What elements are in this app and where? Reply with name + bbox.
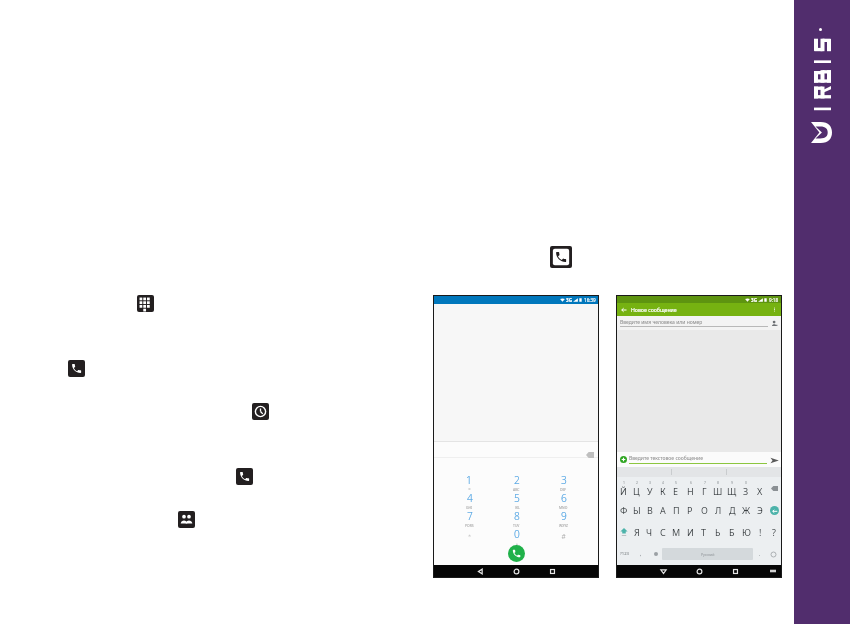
button[interactable]: ? <box>767 521 781 543</box>
staticText: У <box>647 485 653 497</box>
button[interactable]: More options <box>770 305 779 314</box>
button[interactable]: Х <box>753 477 767 499</box>
button[interactable]: Call <box>508 545 525 562</box>
button[interactable]: Home <box>511 566 521 576</box>
button[interactable]: О <box>697 499 711 521</box>
button[interactable]: Backspace <box>585 450 595 460</box>
button[interactable]: 7 <box>697 477 711 499</box>
staticText: , <box>640 551 642 558</box>
button[interactable]: А <box>656 499 669 521</box>
button[interactable]: Э <box>753 499 767 521</box>
button[interactable]: Dialpad <box>137 295 154 312</box>
button[interactable]: Я <box>630 521 643 543</box>
button[interactable]: Ж <box>739 499 753 521</box>
button[interactable]: Call <box>68 360 85 377</box>
button[interactable]: 8 <box>493 509 540 527</box>
button[interactable]: Backspace <box>767 477 781 499</box>
button[interactable]: Shift <box>617 521 630 543</box>
staticText: Введите имя человека или номер <box>620 319 703 326</box>
staticText: 3G <box>566 297 572 303</box>
staticText: М <box>672 526 681 538</box>
staticText: Я <box>634 526 640 538</box>
button[interactable]: # <box>540 527 587 545</box>
button[interactable]: Back <box>619 305 628 314</box>
button[interactable]: Т <box>697 521 711 543</box>
staticText: Щ <box>727 485 737 497</box>
button[interactable]: Call <box>236 468 253 485</box>
button[interactable]: Phone app <box>550 246 572 268</box>
button[interactable]: 8 <box>711 477 725 499</box>
button[interactable]: 6 <box>683 477 697 499</box>
button[interactable]: Р <box>683 499 697 521</box>
button[interactable]: В <box>643 499 656 521</box>
staticText: 2 <box>636 480 638 485</box>
button[interactable]: Enter <box>767 499 781 521</box>
button[interactable]: 5 <box>669 477 683 499</box>
staticText: + <box>516 541 518 545</box>
button[interactable]: Ь <box>711 521 725 543</box>
button[interactable]: 2 <box>630 477 643 499</box>
button[interactable]: Ы <box>630 499 643 521</box>
button[interactable]: ?123 <box>617 543 633 565</box>
button[interactable]: 1 <box>445 473 493 491</box>
staticText: WXYZ <box>559 523 568 527</box>
staticText: Ч <box>646 526 653 538</box>
button[interactable]: Ч <box>643 521 656 543</box>
button[interactable]: И <box>683 521 697 543</box>
button[interactable]: Add contact <box>770 319 779 328</box>
button[interactable]: Hide keyboard <box>769 567 777 575</box>
staticText: И <box>687 526 694 538</box>
button[interactable]: ! <box>753 521 767 543</box>
staticText: Введите текстовое сообщение <box>629 455 703 462</box>
button[interactable]: 2 <box>493 473 540 491</box>
staticText: 16:39 <box>584 297 596 303</box>
button[interactable]: 9 <box>725 477 739 499</box>
staticText: Ь <box>715 526 721 538</box>
staticText: 6 <box>561 491 567 505</box>
button[interactable]: Recents <box>730 566 740 576</box>
button[interactable]: М <box>669 521 683 543</box>
button[interactable]: С <box>656 521 669 543</box>
button[interactable]: 4 <box>445 491 493 509</box>
button[interactable]: Б <box>725 521 739 543</box>
staticText: Л <box>715 504 722 516</box>
button[interactable]: Русский <box>662 548 753 560</box>
button[interactable]: 5 <box>493 491 540 509</box>
button[interactable]: Attach <box>619 455 628 464</box>
staticText: 2 <box>514 473 520 487</box>
staticText: П <box>673 504 680 516</box>
button[interactable]: Ю <box>739 521 753 543</box>
button[interactable]: 3 <box>643 477 656 499</box>
button[interactable]: Send <box>769 455 779 465</box>
staticText: Х <box>757 485 763 497</box>
button[interactable]: Emoji <box>649 543 662 565</box>
button[interactable]: 0 <box>739 477 753 499</box>
button[interactable]: 9 <box>540 509 587 527</box>
button[interactable]: 0 <box>493 527 540 545</box>
button[interactable]: 1 <box>617 477 630 499</box>
button[interactable]: Contacts <box>178 511 195 528</box>
button[interactable]: Back <box>475 566 485 576</box>
staticText: 6 <box>690 480 692 485</box>
button[interactable]: Л <box>711 499 725 521</box>
button[interactable]: 7 <box>445 509 493 527</box>
button[interactable]: , <box>633 543 649 565</box>
button[interactable]: П <box>669 499 683 521</box>
button[interactable]: Recent calls <box>252 403 269 420</box>
button[interactable]: 4 <box>656 477 669 499</box>
staticText: А <box>660 504 666 516</box>
staticText: Н <box>687 485 694 497</box>
button[interactable]: Д <box>725 499 739 521</box>
button[interactable]: 3 <box>540 473 587 491</box>
button[interactable]: Recents <box>547 566 557 576</box>
button[interactable]: Keyboard settings <box>766 543 781 565</box>
button[interactable]: Ф <box>617 499 630 521</box>
button[interactable]: Home <box>694 566 704 576</box>
button[interactable]: 6 <box>540 491 587 509</box>
button[interactable]: Back <box>658 566 668 576</box>
